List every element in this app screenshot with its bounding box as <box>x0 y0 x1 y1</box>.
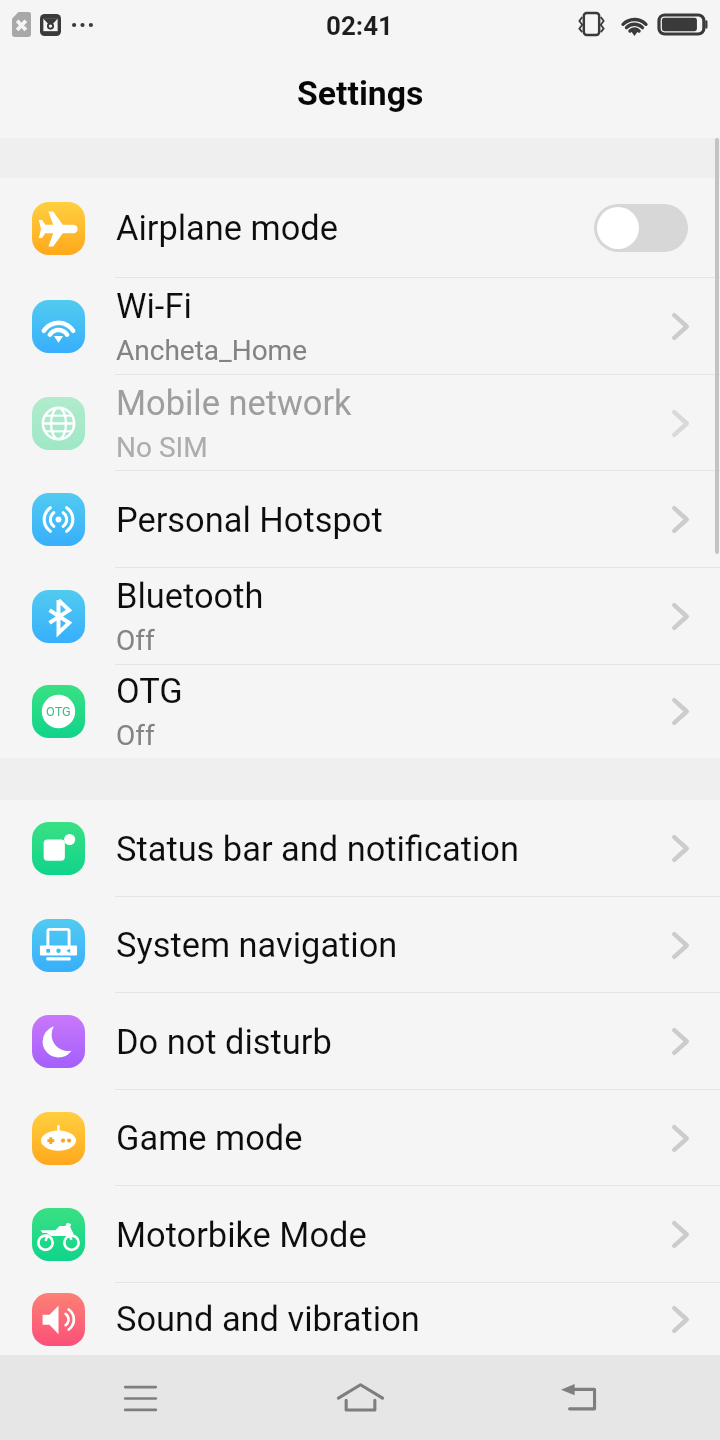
button[interactable]: Sound and vibration <box>0 1283 720 1355</box>
button[interactable]: Personal Hotspot <box>0 471 720 568</box>
staticText: Settings <box>297 74 424 114</box>
staticText: Personal Hotspot <box>116 500 383 540</box>
staticText: Bluetooth <box>116 576 264 616</box>
button[interactable]: OTG <box>0 665 720 758</box>
staticText: OTG <box>116 671 183 711</box>
button[interactable]: Back <box>540 1355 620 1440</box>
button[interactable]: Status bar and notification <box>0 800 720 897</box>
staticText: Game mode <box>116 1118 303 1158</box>
staticText: Motorbike Mode <box>116 1215 367 1255</box>
staticText: No SIM <box>116 431 208 464</box>
button[interactable]: Airplane mode <box>594 204 688 252</box>
staticText: Airplane mode <box>116 208 338 248</box>
button[interactable]: Home <box>320 1355 400 1440</box>
button[interactable]: Game mode <box>0 1090 720 1186</box>
button[interactable]: Do not disturb <box>0 993 720 1090</box>
staticText: Off <box>116 719 155 752</box>
button[interactable]: System navigation <box>0 897 720 993</box>
staticText: Do not disturb <box>116 1022 332 1062</box>
button[interactable]: Mobile network <box>0 375 720 471</box>
staticText: 02:41 <box>326 11 394 41</box>
staticText: Status bar and notification <box>116 829 519 869</box>
staticText: Wi-Fi <box>116 286 192 326</box>
button[interactable]: Motorbike Mode <box>0 1186 720 1283</box>
button[interactable]: Wi-Fi <box>0 278 720 375</box>
staticText: Mobile network <box>116 383 352 423</box>
staticText: Ancheta_Home <box>116 334 308 367</box>
staticText: System navigation <box>116 925 398 965</box>
button[interactable]: Recent apps <box>100 1355 180 1440</box>
staticText: OTG <box>46 704 71 719</box>
button[interactable]: Airplane mode <box>0 178 720 278</box>
button[interactable]: Bluetooth <box>0 568 720 665</box>
staticText: Sound and vibration <box>116 1299 420 1339</box>
staticText: Off <box>116 624 155 657</box>
